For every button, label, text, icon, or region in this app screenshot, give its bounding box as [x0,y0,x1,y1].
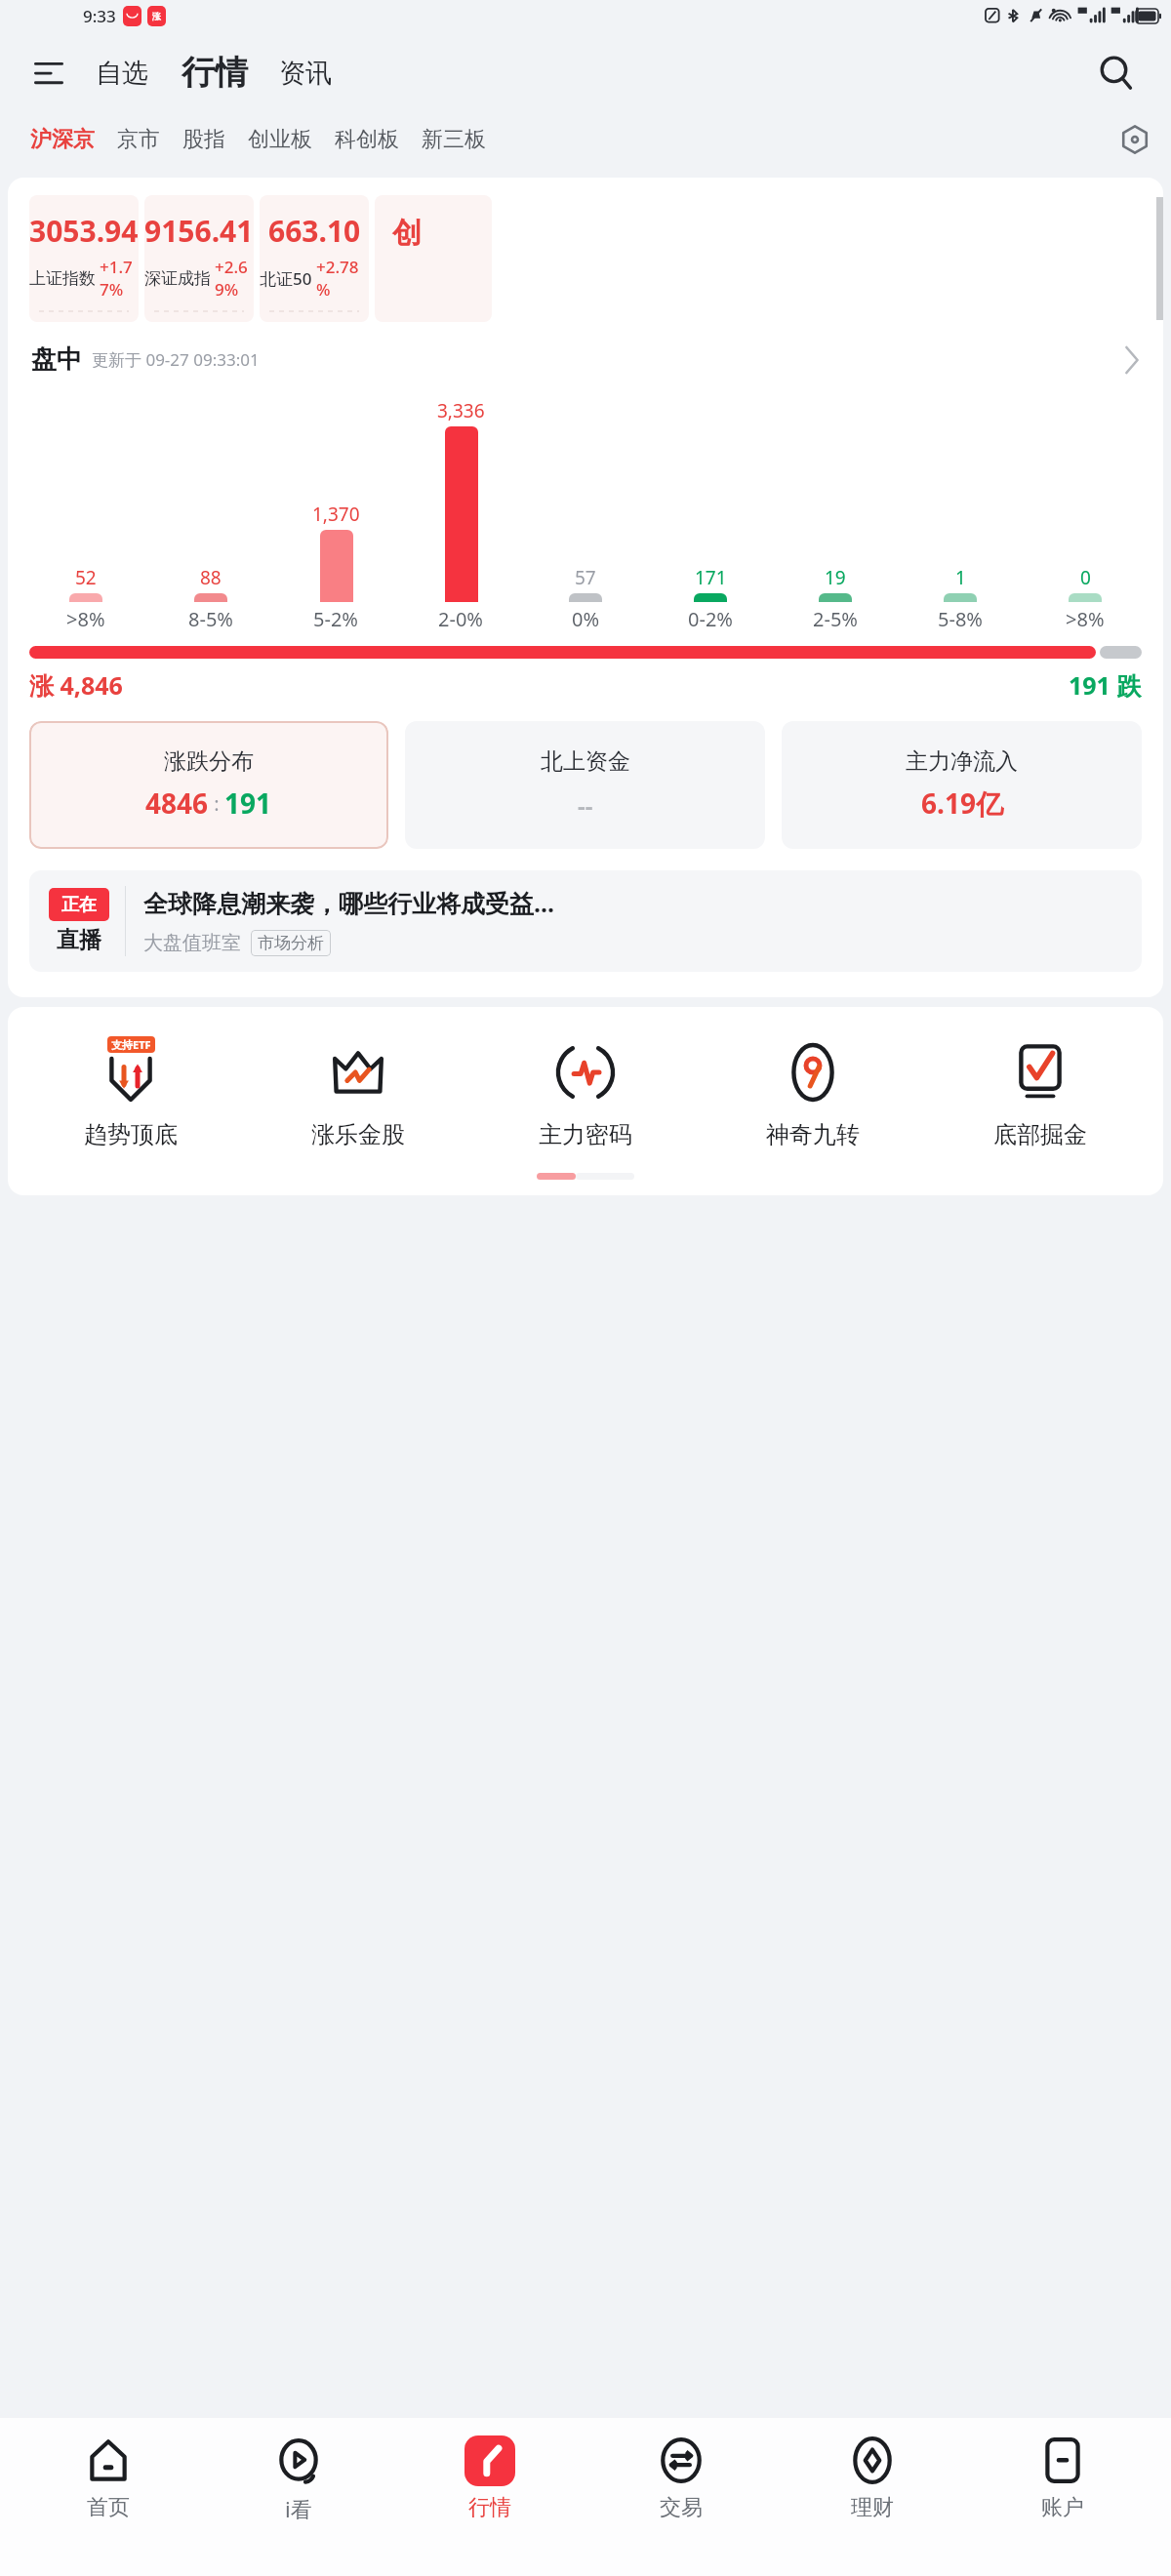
staticText: 3053.94 [29,211,139,251]
staticText: 北证50 [260,267,312,290]
staticText: 首页 [87,2494,130,2521]
staticText: 52 [75,565,97,590]
staticText: 4846 [145,785,209,822]
button[interactable]: 盘中 [31,343,1140,376]
staticText: 大盘值班室 [143,931,241,955]
button[interactable]: 底部掘金 [926,1038,1153,1149]
button[interactable]: 行情 [407,2435,573,2521]
staticText: 神奇九转 [766,1120,860,1149]
staticText: 9156.41 [144,211,254,251]
staticText: i看 [285,2494,312,2523]
staticText: 新三板 [422,126,486,153]
button[interactable]: Search [1087,44,1146,102]
button[interactable]: 交易 [598,2435,764,2521]
staticText: 创业板 [248,126,312,153]
staticText: 盘中 [31,343,82,376]
button[interactable]: 涨乐金股 [244,1038,471,1149]
button[interactable]: 创业板 [239,120,321,159]
button[interactable]: Menu [21,46,76,101]
staticText: 更新于 09-27 09:33:01 [92,348,260,371]
staticText: 1 [955,565,966,590]
button[interactable]: 自选 [90,49,154,98]
staticText: -- [578,789,593,822]
staticText: 5-8% [938,606,983,632]
button[interactable]: 涨跌分布 [29,721,388,849]
button[interactable]: 3053.94 [29,195,139,322]
button[interactable]: 正在 [29,870,1142,972]
button[interactable]: 创 [375,195,492,322]
staticText: 京市 [117,126,160,153]
staticText: 主力净流入 [906,747,1018,776]
staticText: 交易 [660,2494,703,2521]
staticText: 账户 [1041,2494,1084,2521]
staticText: 底部掘金 [993,1120,1087,1149]
staticText: 支持ETF [111,1037,151,1052]
button[interactable]: 主力净流入 [782,721,1142,849]
staticText: 9:33 [83,5,116,27]
staticText: >8% [66,606,105,632]
staticText: 1,370 [312,502,360,527]
button[interactable]: 资讯 [273,49,338,98]
staticText: 57 [575,565,596,590]
staticText: 主力密码 [539,1120,632,1149]
button[interactable]: 科创板 [326,120,408,159]
button[interactable]: 663.10 [260,195,369,322]
staticText: 沪深京 [30,126,95,153]
staticText: +2.78% [316,256,369,301]
button[interactable]: 沪深京 [21,120,103,159]
staticText: 上证指数 [29,268,96,289]
staticText: 理财 [851,2494,894,2521]
staticText: 全球降息潮来袭，哪些行业将成受益... [143,886,555,919]
staticText: 191 跌 [1069,668,1142,702]
staticText: 2-5% [813,606,858,632]
staticText: 深证成指 [144,268,211,289]
button[interactable]: 神奇九转 [699,1038,926,1149]
button[interactable]: 支持ETF [18,1038,244,1149]
staticText: 0% [572,606,600,632]
staticText: 0-2% [688,606,733,632]
button[interactable]: 账户 [980,2435,1146,2521]
staticText: 5-2% [313,606,358,632]
staticText: 科创板 [335,126,399,153]
staticText: 自选 [96,57,148,90]
staticText: +1.77% [100,256,139,301]
staticText: 行情 [468,2494,511,2521]
staticText: 北上资金 [541,747,630,776]
staticText: : [209,790,224,817]
staticText: 涨跌分布 [164,747,254,776]
button[interactable]: 首页 [25,2435,191,2521]
staticText: 行情 [182,52,248,94]
staticText: 涨乐金股 [311,1120,405,1149]
button[interactable]: i看 [216,2435,382,2523]
staticText: 6.19亿 [921,785,1003,822]
button[interactable]: 理财 [789,2435,955,2521]
staticText: 0 [1080,565,1091,590]
staticText: +2.69% [215,256,254,301]
staticText: 663.10 [268,211,361,251]
button[interactable]: 主力密码 [471,1038,699,1149]
button[interactable]: Settings [1099,114,1171,165]
staticText: 19 [825,565,846,590]
staticText: 直播 [57,926,101,954]
staticText: 涨 [152,11,161,21]
staticText: 2-0% [438,606,483,632]
staticText: 创 [392,215,422,252]
staticText: 趋势顶底 [84,1120,178,1149]
staticText: 市场分析 [258,933,324,953]
staticText: 88 [200,565,222,590]
button[interactable]: 9156.41 [144,195,254,322]
staticText: 资讯 [279,57,332,90]
staticText: 正在 [61,894,97,916]
staticText: >8% [1066,606,1105,632]
staticText: 171 [695,565,727,590]
staticText: 涨 4,846 [29,668,123,702]
button[interactable]: 新三板 [413,120,495,159]
button[interactable]: 北上资金 [405,721,765,849]
staticText: 191 [224,785,272,822]
staticText: 3,336 [437,398,485,423]
button[interactable]: 京市 [108,120,169,159]
button[interactable]: 股指 [174,120,234,159]
button[interactable]: 行情 [176,48,254,98]
staticText: 8-5% [188,606,233,632]
staticText: 股指 [182,126,225,153]
